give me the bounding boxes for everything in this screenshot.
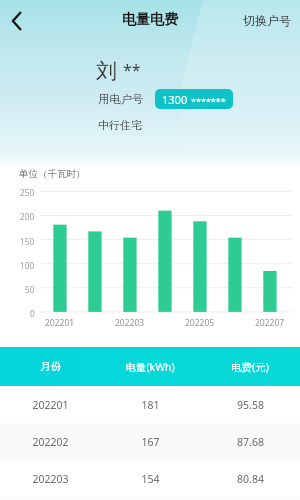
staticText: 202201: [32, 398, 69, 412]
staticText: 167: [141, 435, 160, 449]
staticText: 单位（千瓦时）: [19, 168, 86, 180]
staticText: 100: [20, 260, 35, 271]
staticText: 0: [30, 308, 35, 319]
staticText: 刘: [96, 58, 117, 84]
staticText: 202205: [185, 317, 215, 329]
staticText: 87.68: [237, 435, 264, 449]
staticText: 202207: [255, 317, 285, 329]
staticText: 月份: [40, 360, 61, 373]
staticText: 200: [20, 211, 35, 222]
staticText: 202201: [45, 317, 75, 329]
staticText: 用电户号: [98, 92, 144, 106]
button[interactable]: Back: [0, 0, 36, 40]
staticText: 电费(元): [231, 360, 269, 374]
staticText: 50: [25, 284, 35, 295]
staticText: 切换户号: [243, 13, 291, 28]
staticText: **: [123, 59, 141, 81]
button[interactable]: 202201: [0, 386, 300, 423]
staticText: *******: [191, 95, 226, 107]
staticText: 150: [20, 236, 35, 247]
staticText: 95.58: [237, 398, 264, 412]
button[interactable]: 202202: [0, 423, 300, 460]
staticText: 181: [141, 398, 160, 412]
staticText: 1300: [162, 92, 188, 107]
staticText: 中行住宅: [98, 118, 142, 132]
staticText: 202203: [115, 317, 145, 329]
staticText: 电量电费: [122, 11, 178, 29]
button[interactable]: 电量电费: [118, 7, 182, 33]
button[interactable]: 1300: [155, 89, 233, 109]
staticText: 202202: [32, 435, 69, 449]
staticText: 电量(kWh): [125, 360, 175, 374]
staticText: 250: [20, 187, 35, 198]
staticText: 80.84: [237, 472, 264, 486]
staticText: 154: [141, 472, 160, 486]
staticText: 202203: [32, 472, 69, 486]
button[interactable]: 202203: [0, 460, 300, 497]
button[interactable]: 切换户号: [231, 3, 300, 38]
